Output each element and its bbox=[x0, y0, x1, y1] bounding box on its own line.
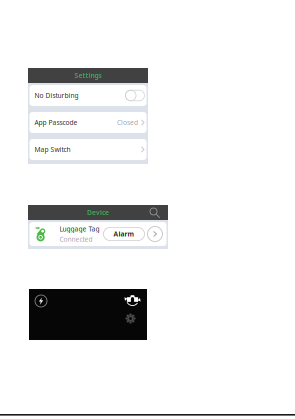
button[interactable]: Camera settings bbox=[126, 314, 135, 323]
staticText: Settings bbox=[74, 71, 101, 80]
staticText: Map Switch bbox=[34, 145, 70, 154]
staticText: App Passcode bbox=[34, 118, 77, 127]
button[interactable]: Search bbox=[150, 208, 160, 218]
staticText: Device bbox=[87, 208, 109, 217]
staticText: No Disturbing bbox=[34, 91, 78, 100]
button[interactable]: Map Switch bbox=[29, 139, 146, 160]
button[interactable]: Flash bbox=[34, 294, 48, 308]
staticText: Closed bbox=[117, 118, 138, 127]
button[interactable]: No Disturbing bbox=[29, 85, 146, 106]
staticText: Alarm bbox=[113, 230, 134, 238]
button[interactable]: App Passcode bbox=[29, 112, 146, 133]
button[interactable]: Luggage Tag bbox=[29, 222, 166, 246]
button[interactable]: Switch camera bbox=[124, 294, 141, 307]
staticText: Luggage Tag bbox=[59, 224, 99, 233]
staticText: Connected bbox=[59, 235, 92, 244]
